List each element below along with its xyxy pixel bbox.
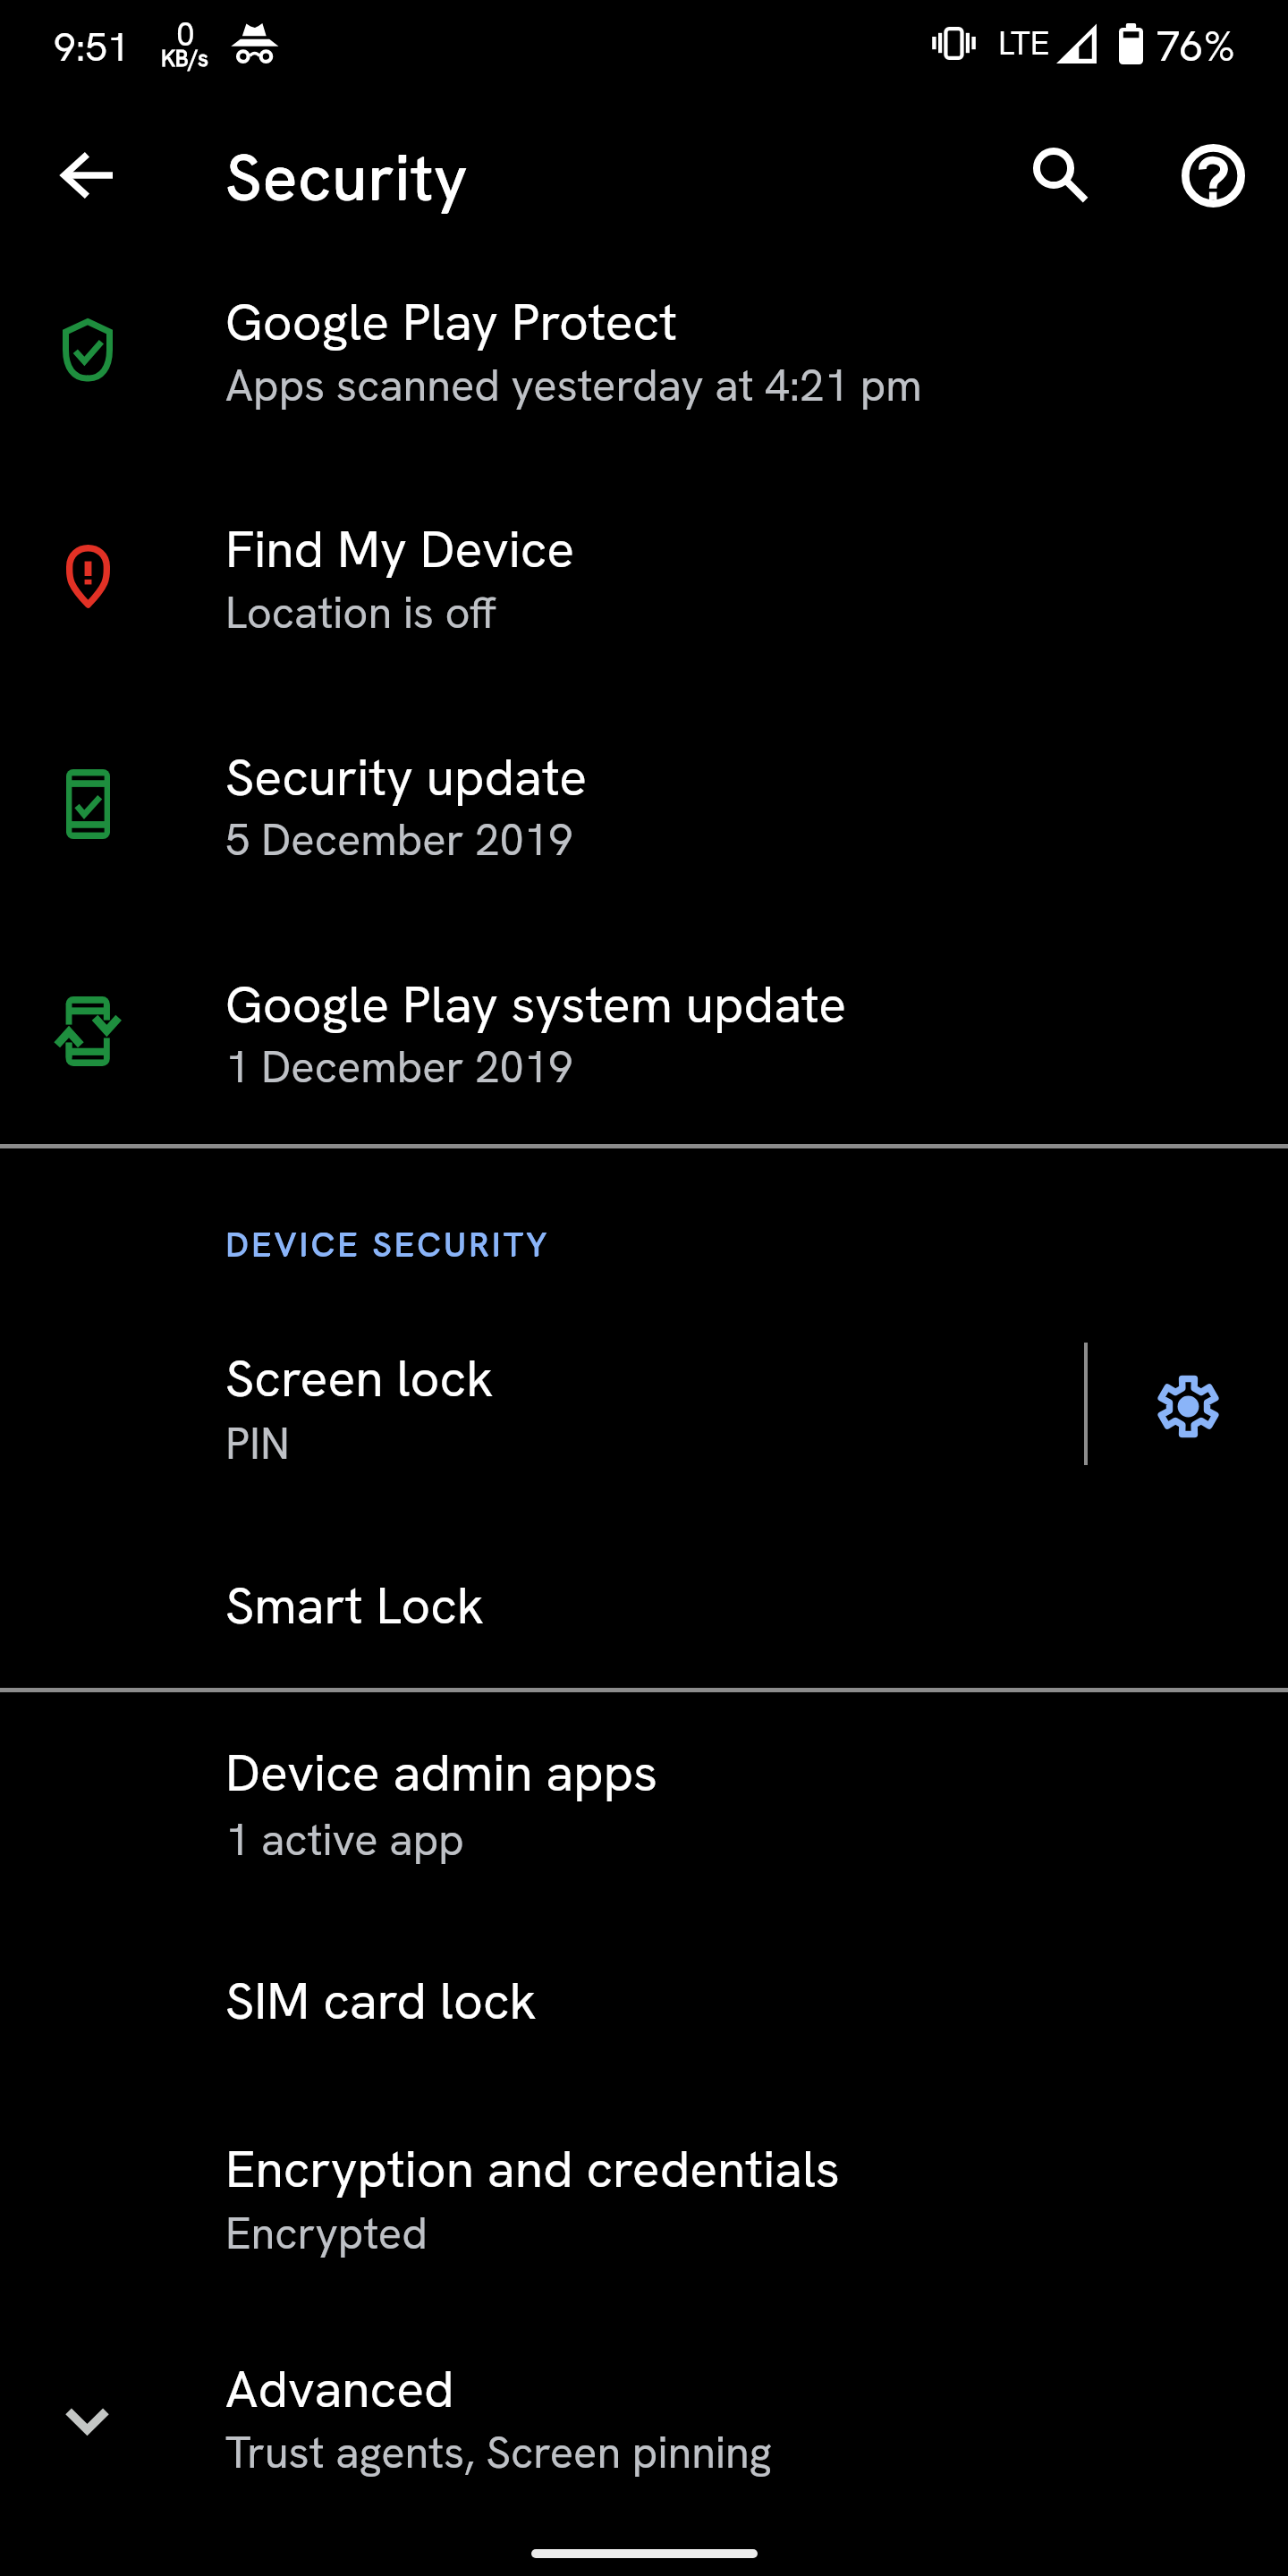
staticText: Smart Lock	[225, 1572, 485, 1640]
staticText: DEVICE SECURITY	[226, 1223, 551, 1266]
staticText: PIN	[225, 1415, 291, 1472]
staticText: Google Play Protect	[225, 289, 677, 356]
button[interactable]: SIM card lock	[0, 1919, 1288, 2089]
button[interactable]: Google Play system update	[0, 950, 1288, 1144]
staticText: LTE	[998, 21, 1050, 64]
button[interactable]: Find My Device	[0, 496, 1288, 723]
staticText: 1 active app	[225, 1811, 464, 1868]
staticText: 9:51	[54, 21, 130, 72]
button[interactable]: Help	[1150, 113, 1275, 238]
button[interactable]: Advanced	[0, 2317, 1288, 2549]
button[interactable]: Encryption and credentials	[0, 2089, 1288, 2317]
staticText: 5 December 2019	[225, 811, 573, 869]
staticText: Security	[225, 137, 469, 219]
staticText: Security update	[225, 744, 588, 811]
staticText: DEVICE SECURITY	[225, 1224, 550, 1267]
staticText: Apps scanned yesterday at 4:21 pm	[225, 357, 922, 414]
staticText: Find My Device	[225, 516, 575, 583]
staticText: Encrypted	[225, 2205, 428, 2262]
staticText: Trust agents, Screen pinning	[225, 2424, 772, 2481]
button[interactable]: Device admin apps	[0, 1692, 1288, 1919]
staticText: 0	[176, 13, 195, 55]
button[interactable]: Smart Lock	[0, 1529, 1288, 1688]
staticText: 76%	[1157, 19, 1235, 73]
staticText: DEVICE SECURITY	[225, 1223, 550, 1266]
staticText: KB/s	[161, 44, 209, 73]
staticText: Security	[225, 136, 469, 218]
button[interactable]: Screen lock	[0, 1302, 1070, 1529]
button[interactable]: Google Play Protect	[0, 268, 1288, 496]
staticText: 1 December 2019	[225, 1038, 573, 1096]
button[interactable]: Security update	[0, 723, 1288, 950]
staticText: Device admin apps	[225, 1740, 658, 1807]
button[interactable]: Screen lock settings	[1098, 1302, 1277, 1529]
staticText: Advanced	[225, 2356, 454, 2423]
staticText: Location is off	[225, 584, 496, 641]
staticText: Encryption and credentials	[225, 2136, 840, 2203]
staticText: Screen lock	[225, 1345, 494, 1412]
staticText: Security	[226, 136, 470, 218]
staticText: SIM card lock	[225, 1968, 537, 2035]
button[interactable]: Back	[25, 113, 150, 238]
button[interactable]: Search	[998, 113, 1123, 238]
staticText: Google Play system update	[225, 971, 847, 1038]
